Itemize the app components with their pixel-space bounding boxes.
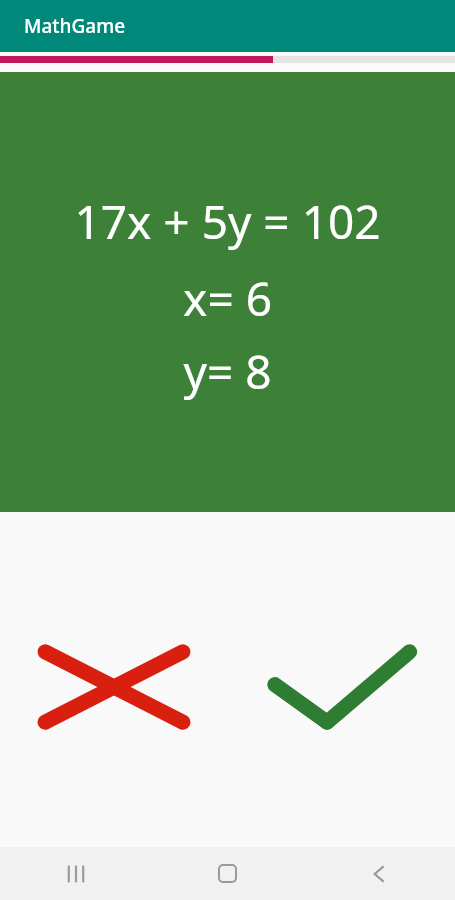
staticText: MathGame [24, 13, 126, 39]
button[interactable]: Recent apps [0, 847, 151, 900]
staticText: y= 8 [183, 340, 272, 403]
staticText: 17x + 5y = 102 [74, 190, 381, 253]
button[interactable]: Back [303, 847, 455, 900]
button[interactable]: Correct answer [227, 632, 455, 742]
button[interactable]: Home [151, 847, 303, 900]
staticText: x= 6 [183, 267, 272, 330]
button[interactable]: Wrong answer [0, 632, 227, 742]
